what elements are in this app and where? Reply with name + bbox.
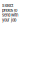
staticText: Select photos to send with your job	[2, 3, 18, 22]
